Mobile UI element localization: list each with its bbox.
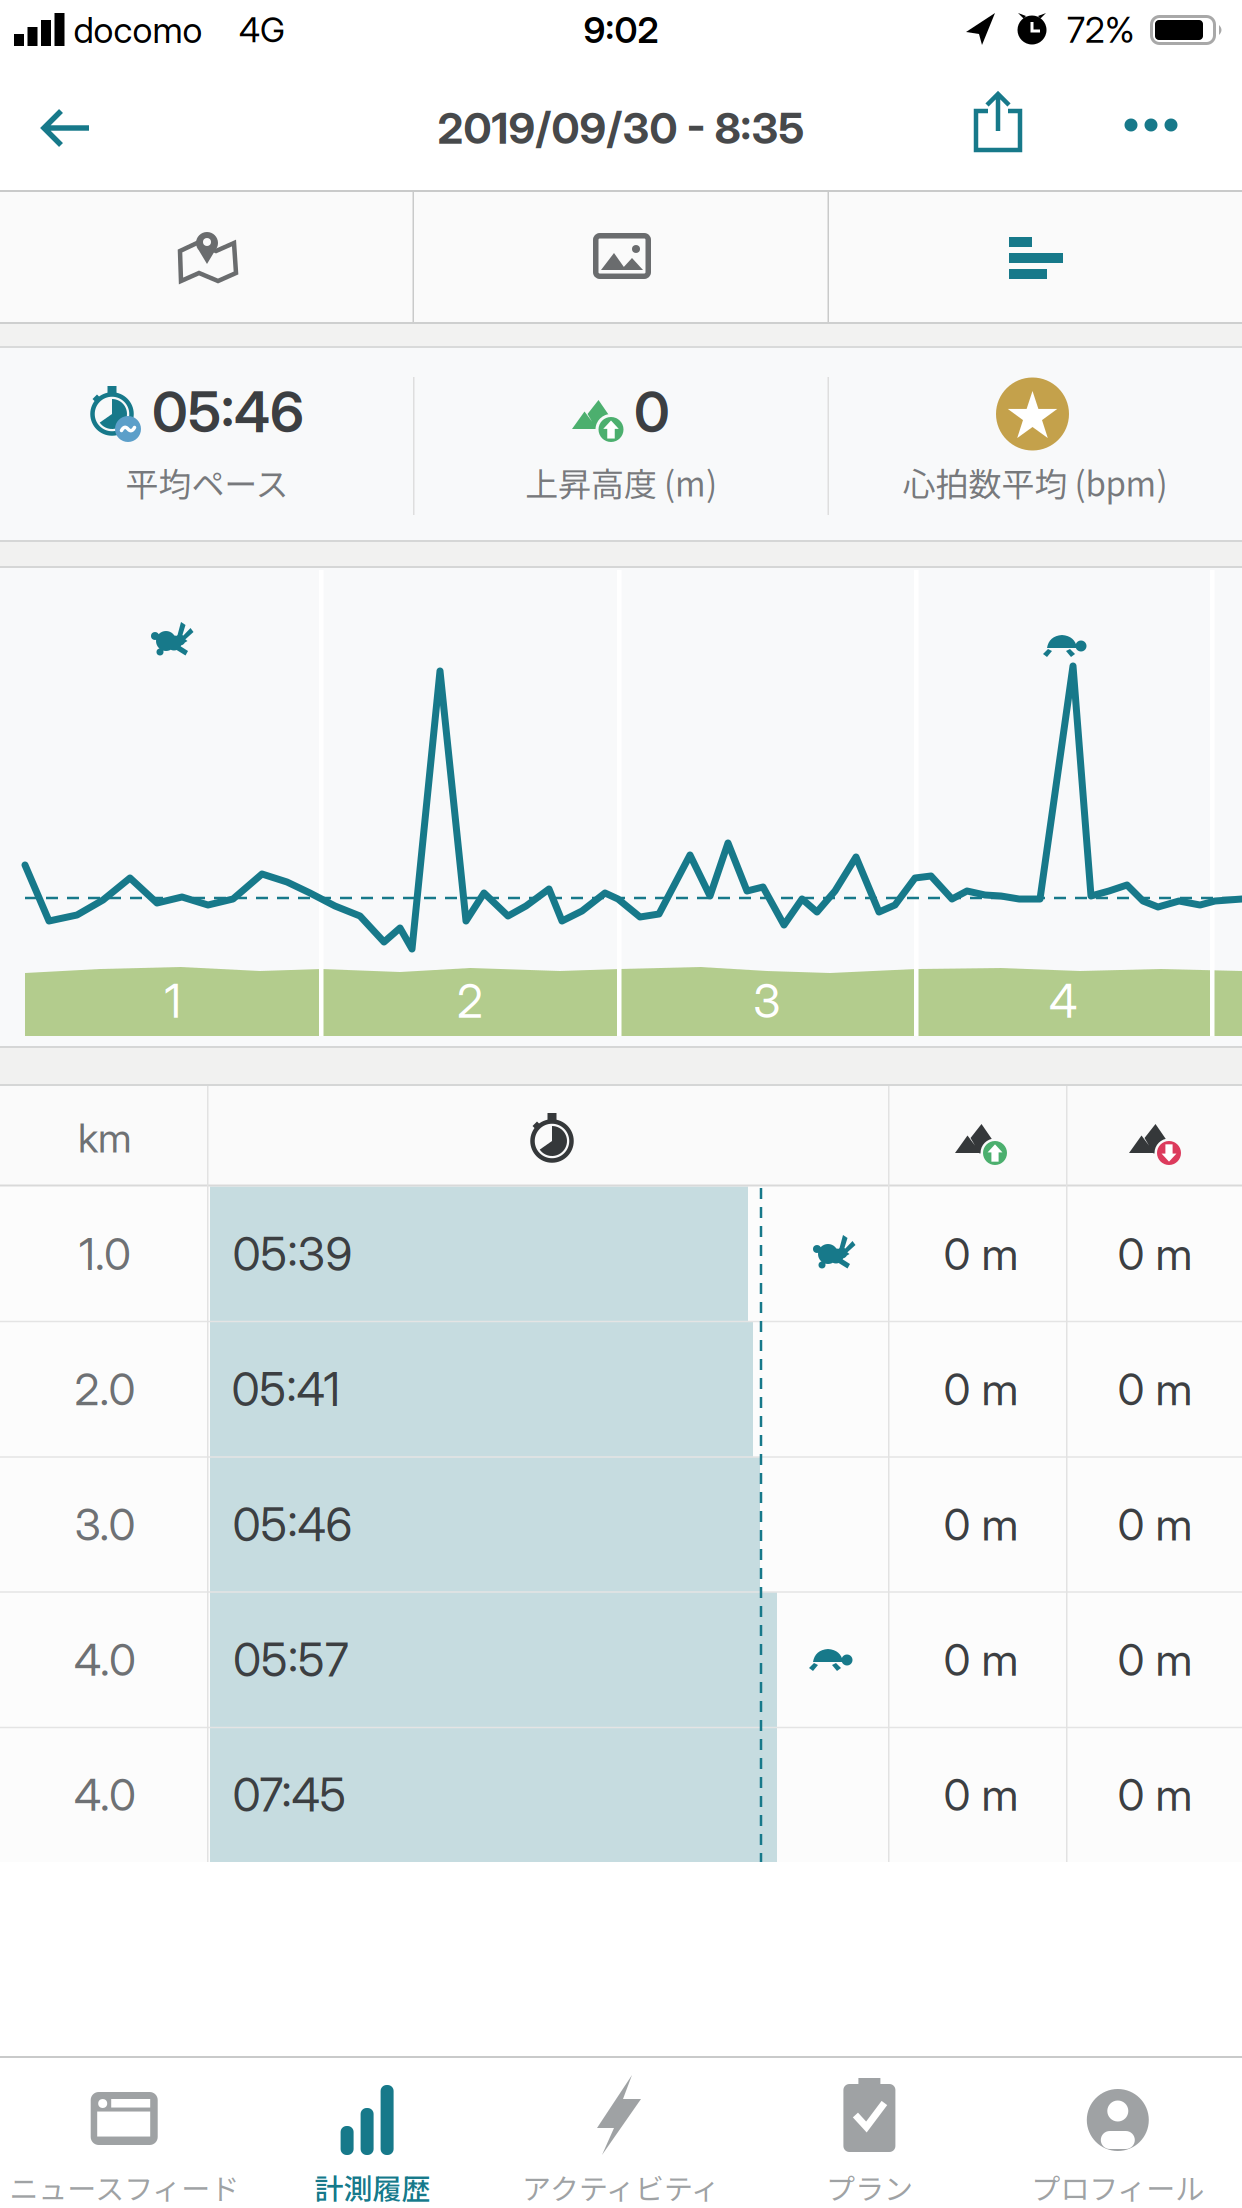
staticText: 05:46 [152, 378, 304, 446]
staticText: 3 [753, 973, 781, 1029]
button[interactable]: Share [945, 83, 1051, 169]
button[interactable]: 計測履歴 [249, 2059, 497, 2207]
button[interactable]: プロフィール [994, 2059, 1242, 2207]
button[interactable]: More [1098, 85, 1204, 165]
staticText: 72% [1067, 9, 1135, 51]
staticText: 3.0 [74, 1498, 135, 1551]
staticText: 0 m [1117, 1633, 1192, 1686]
staticText: 4.0 [74, 1768, 136, 1821]
staticText: 1 [164, 973, 181, 1029]
staticText: 2 [457, 973, 483, 1029]
staticText: 平均ペース [125, 458, 288, 506]
staticText: 0 m [1117, 1768, 1192, 1821]
staticText: km [78, 1114, 132, 1162]
staticText: 0 [634, 378, 670, 446]
button[interactable]: プラン [745, 2059, 993, 2207]
staticText: 4 [1049, 973, 1077, 1029]
staticText: 2019/09/30 - 8:35 [437, 102, 804, 154]
staticText: 0 m [1117, 1363, 1192, 1416]
staticText: 4G [239, 9, 285, 50]
staticText: プロフィール [1031, 2166, 1204, 2208]
staticText: 上昇高度 (m) [525, 458, 717, 506]
staticText: 2.0 [74, 1363, 135, 1416]
staticText: プラン [826, 2166, 913, 2208]
staticText: 計測履歴 [315, 2166, 431, 2208]
staticText: 0 m [943, 1363, 1018, 1416]
staticText: 05:41 [231, 1361, 340, 1417]
staticText: 9:02 [583, 8, 658, 52]
button[interactable]: Statistics [829, 192, 1241, 322]
staticText: 05:39 [232, 1226, 352, 1282]
button[interactable]: Back [30, 85, 120, 171]
button[interactable]: ニュースフィード [0, 2059, 248, 2207]
staticText: 0 m [943, 1633, 1018, 1686]
staticText: 05:57 [233, 1632, 349, 1688]
staticText: 0 m [1117, 1498, 1192, 1551]
staticText: 0 m [943, 1768, 1018, 1821]
staticText: アクティビティ [522, 2166, 720, 2208]
staticText: 0 m [943, 1227, 1018, 1281]
staticText: 心拍数平均 (bpm) [902, 458, 1167, 506]
button[interactable]: Photos [415, 192, 827, 322]
staticText: ニュースフィード [9, 2166, 239, 2208]
button[interactable]: Map [1, 192, 413, 322]
button[interactable]: アクティビティ [497, 2059, 745, 2207]
staticText: 1.0 [79, 1227, 131, 1281]
staticText: 0 m [1117, 1227, 1192, 1281]
staticText: 4.0 [74, 1633, 136, 1686]
staticText: 05:46 [232, 1497, 352, 1552]
staticText: docomo [73, 8, 202, 52]
staticText: 0 m [943, 1498, 1018, 1551]
staticText: 07:45 [232, 1767, 346, 1823]
